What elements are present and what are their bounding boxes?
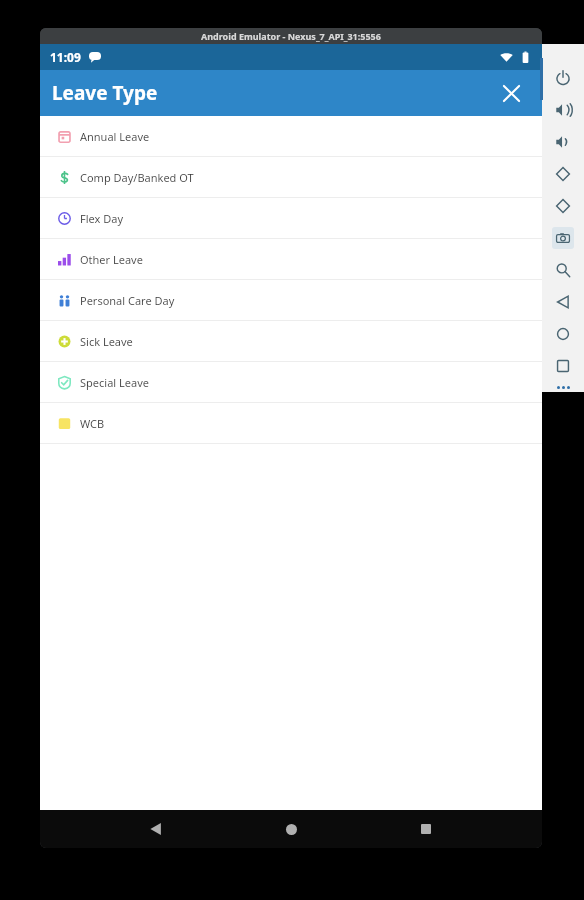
button[interactable]: Zoom [542, 254, 584, 286]
button[interactable]: Close [494, 76, 528, 110]
button[interactable]: Home [542, 318, 584, 350]
button[interactable]: Flex Day [40, 198, 542, 238]
button[interactable]: Power [542, 62, 584, 94]
button[interactable]: Rotate left [542, 158, 584, 190]
staticText: Special Leave [80, 375, 149, 390]
button[interactable]: Personal Care Day [40, 280, 542, 320]
staticText: Other Leave [80, 252, 143, 267]
staticText: Android Emulator - Nexus_7_API_31:5556 [201, 30, 381, 42]
button[interactable]: WCB [40, 403, 542, 443]
button[interactable]: Sick Leave [40, 321, 542, 361]
staticText: Annual Leave [80, 129, 150, 144]
button[interactable]: Home [272, 810, 310, 848]
staticText: Flex Day [80, 211, 124, 226]
button[interactable]: Special Leave [40, 362, 542, 402]
staticText: 11:09 [50, 49, 81, 65]
button[interactable]: Rotate right [542, 190, 584, 222]
button[interactable]: Volume up [542, 94, 584, 126]
button[interactable]: Comp Day/Banked OT [40, 157, 542, 197]
staticText: Comp Day/Banked OT [80, 170, 194, 185]
button[interactable]: Back [137, 810, 175, 848]
button[interactable]: Screenshot [542, 222, 584, 254]
staticText: WCB [80, 416, 105, 431]
button[interactable]: Volume down [542, 126, 584, 158]
button[interactable]: Recents [407, 810, 445, 848]
button[interactable]: Back [542, 286, 584, 318]
staticText: Leave Type [52, 80, 158, 106]
button[interactable]: Other Leave [40, 239, 542, 279]
button[interactable]: Annual Leave [40, 116, 542, 156]
staticText: Sick Leave [80, 334, 133, 349]
staticText: Personal Care Day [80, 293, 175, 308]
button[interactable]: More [542, 382, 584, 392]
button[interactable]: Overview [542, 350, 584, 382]
